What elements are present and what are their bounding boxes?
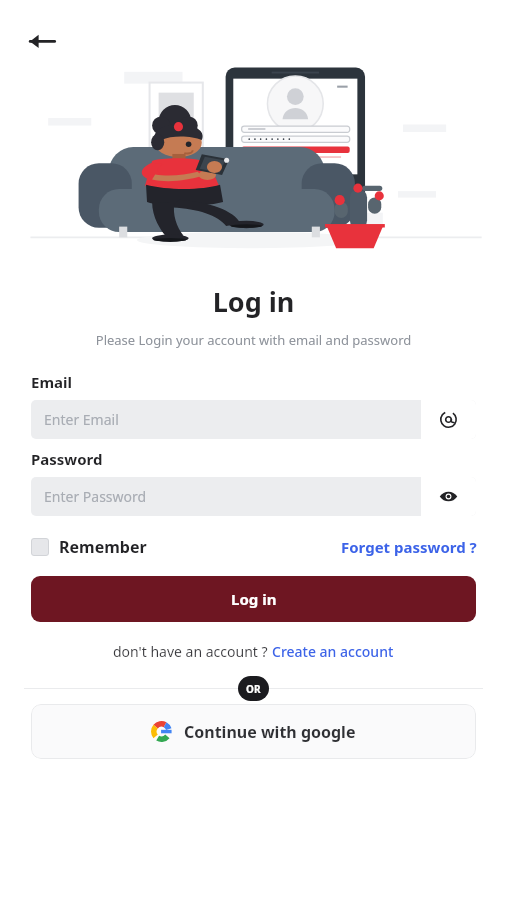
button[interactable]: Remember (31, 536, 147, 558)
staticText: Log in (0, 283, 507, 320)
button[interactable]: Email icon (421, 400, 476, 439)
staticText: Email (31, 372, 72, 392)
button[interactable]: Enter Password (31, 477, 476, 516)
button[interactable]: Create an account (272, 642, 394, 661)
button[interactable]: Show password (421, 477, 476, 516)
staticText: Remember (59, 536, 147, 558)
staticText: Continue with google (184, 721, 356, 743)
staticText: Enter Password (44, 487, 421, 506)
staticText: Create an account (272, 642, 394, 661)
staticText: don't have an account ? (113, 642, 272, 661)
button[interactable]: Continue with google (31, 704, 476, 759)
button[interactable]: Back (22, 20, 62, 60)
staticText: Log in (231, 589, 277, 609)
button[interactable]: Log in (31, 576, 476, 622)
button[interactable]: Enter Email (31, 400, 476, 439)
staticText: Forget password ? (341, 537, 477, 557)
staticText: OR (246, 682, 261, 696)
staticText: Please Login your account with email and… (0, 331, 507, 349)
staticText: Password (31, 449, 103, 469)
staticText: Enter Email (44, 410, 421, 429)
button[interactable]: Forget password ? (341, 537, 477, 557)
